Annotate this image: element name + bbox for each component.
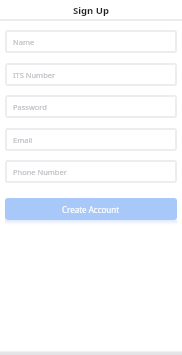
staticText: Phone Number bbox=[13, 167, 67, 177]
staticText: Name bbox=[13, 37, 35, 47]
staticText: ITS Number bbox=[13, 70, 56, 80]
button[interactable]: Password bbox=[5, 95, 177, 118]
button[interactable]: Create Account bbox=[5, 198, 177, 220]
button[interactable]: Name bbox=[5, 30, 177, 53]
staticText: Password bbox=[13, 102, 47, 112]
button[interactable]: ITS Number bbox=[5, 63, 177, 86]
button[interactable]: Phone Number bbox=[5, 160, 177, 183]
button[interactable]: Email bbox=[5, 128, 177, 151]
staticText: Create Account bbox=[62, 204, 120, 215]
staticText: Email bbox=[13, 135, 33, 145]
staticText: Sign Up bbox=[73, 4, 109, 17]
